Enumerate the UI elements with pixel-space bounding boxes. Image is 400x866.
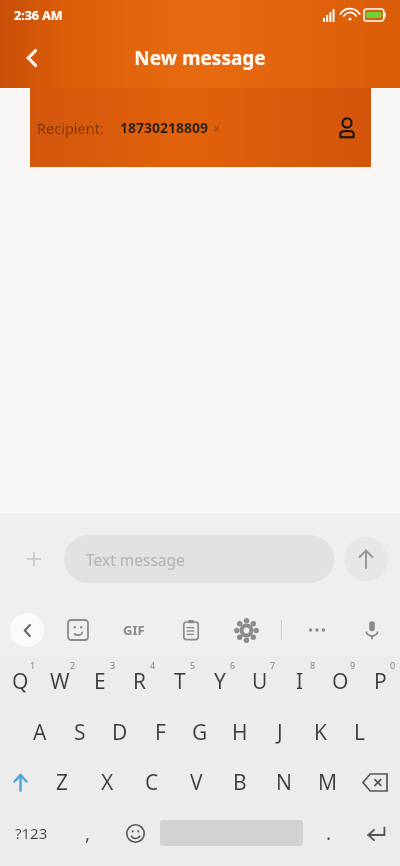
staticText: Y [214,667,226,696]
button[interactable]: Back [10,613,44,647]
button[interactable]: Y [200,655,240,707]
button[interactable]: R [120,655,160,707]
button[interactable]: P [360,655,400,707]
staticText: 6 [230,659,236,671]
button[interactable]: Z [40,757,85,807]
staticText: × [213,120,220,136]
staticText: 3 [110,659,116,671]
button[interactable]: Send [344,537,388,581]
button[interactable]: Settings [226,610,266,650]
staticText: 1 [30,659,36,671]
staticText: E [94,667,106,696]
button[interactable]: W [40,655,80,707]
staticText: N [276,768,292,797]
button[interactable]: J [260,707,300,757]
button[interactable]: Voice input [352,610,392,650]
staticText: Q [12,667,29,696]
staticText: 2:36 AM [14,7,63,24]
staticText: Text message [86,549,185,570]
button[interactable]: G [180,707,220,757]
staticText: 9 [350,659,356,671]
button[interactable]: O [320,655,360,707]
staticText: D [112,718,128,747]
staticText: O [332,667,349,696]
button[interactable]: U [240,655,280,707]
button[interactable]: More options [297,610,337,650]
button[interactable]: L [340,707,380,757]
staticText: Recipient: [37,118,104,138]
button[interactable]: I [280,655,320,707]
button[interactable]: GIF [112,608,156,652]
button[interactable]: V [174,757,218,807]
staticText: P [374,667,387,696]
staticText: V [190,768,203,797]
staticText: J [277,718,283,747]
button[interactable]: Emoji [114,807,156,859]
button[interactable]: Delete [350,757,400,807]
staticText: 5 [190,659,196,671]
staticText: R [133,667,147,696]
button[interactable]: E [80,655,120,707]
button[interactable]: F [140,707,180,757]
staticText: . [326,820,332,846]
staticText: , [85,820,91,846]
button[interactable]: Text message [64,535,334,583]
staticText: X [101,768,114,797]
button[interactable]: D [100,707,140,757]
button[interactable]: ?123 [0,807,62,859]
button[interactable]: B [218,757,262,807]
button[interactable]: Clipboard [171,610,211,650]
staticText: 18730218809 [120,118,209,137]
button[interactable]: K [300,707,340,757]
button[interactable]: T [160,655,200,707]
staticText: New message [0,45,400,71]
staticText: C [145,768,159,797]
staticText: Z [56,768,69,797]
button[interactable]: Q [0,655,40,707]
staticText: 7 [270,659,276,671]
staticText: 0 [390,659,396,671]
button[interactable]: Back [10,36,54,80]
staticText: 4 [150,659,156,671]
staticText: W [50,667,70,696]
button[interactable]: Stickers [58,610,98,650]
staticText: I [296,667,304,696]
button[interactable]: C [130,757,174,807]
staticText: 8 [310,659,316,671]
staticText: H [232,718,248,747]
staticText: T [174,667,186,696]
staticText: A [33,718,47,747]
button[interactable]: Contacts [327,108,367,148]
button[interactable]: Recipient: [30,88,371,167]
button[interactable]: M [306,757,350,807]
button[interactable]: . [306,807,352,859]
button[interactable]: S [60,707,100,757]
button[interactable]: H [220,707,260,757]
button[interactable]: , [62,807,114,859]
staticText: S [74,718,86,747]
button[interactable]: X [85,757,130,807]
button[interactable]: Enter [352,807,400,859]
button[interactable]: A [20,707,60,757]
button[interactable]: Shift [0,757,40,807]
staticText: F [155,718,166,747]
button[interactable]: N [262,757,306,807]
staticText: 2 [70,659,76,671]
staticText: M [318,768,338,797]
button[interactable]: Attach [12,537,56,581]
staticText: K [314,718,327,747]
staticText: ?123 [15,823,48,843]
staticText: U [252,667,268,696]
staticText: G [192,718,208,747]
staticText: GIF [123,621,145,639]
staticText: L [354,718,366,747]
staticText: B [233,768,247,797]
